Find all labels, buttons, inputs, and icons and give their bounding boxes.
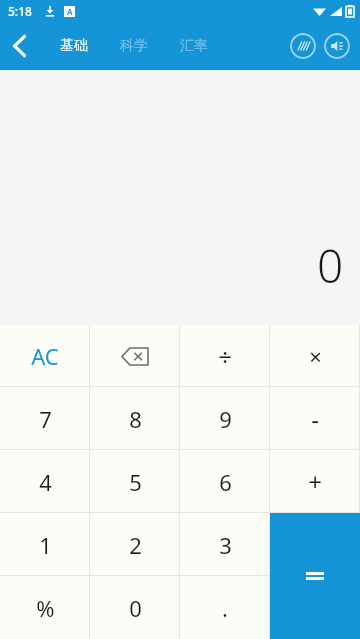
- button[interactable]: 0: [90, 576, 180, 639]
- button[interactable]: 8: [90, 387, 180, 450]
- button[interactable]: 7: [0, 387, 90, 450]
- button[interactable]: 9: [180, 387, 270, 450]
- button[interactable]: %: [0, 576, 90, 639]
- button[interactable]: 5: [90, 450, 180, 513]
- staticText: 科学: [120, 37, 148, 55]
- staticText: 8: [129, 404, 142, 434]
- staticText: ÷: [218, 340, 232, 373]
- button[interactable]: 科学: [104, 24, 164, 68]
- button[interactable]: ÷: [180, 325, 270, 387]
- staticText: 7: [39, 404, 52, 434]
- staticText: 5:18: [8, 3, 32, 19]
- staticText: %: [36, 593, 55, 623]
- staticText: 基础: [60, 37, 88, 55]
- staticText: 1: [39, 530, 52, 560]
- staticText: 汇率: [180, 37, 208, 55]
- button[interactable]: Back: [0, 22, 40, 70]
- staticText: AC: [31, 341, 59, 371]
- staticText: +: [308, 465, 322, 498]
- staticText: ×: [309, 341, 322, 371]
- staticText: -: [311, 402, 319, 435]
- button[interactable]: 基础: [44, 24, 104, 68]
- button[interactable]: Backspace: [90, 325, 180, 387]
- button[interactable]: ×: [270, 325, 360, 387]
- button[interactable]: AC: [0, 325, 90, 387]
- staticText: 2: [129, 530, 142, 560]
- button[interactable]: Vibration: [290, 33, 316, 59]
- button[interactable]: 6: [180, 450, 270, 513]
- button[interactable]: +: [270, 450, 360, 513]
- staticText: .: [222, 593, 228, 623]
- staticText: 9: [219, 404, 232, 434]
- staticText: 0: [317, 234, 344, 297]
- button[interactable]: .: [180, 576, 270, 639]
- button[interactable]: 2: [90, 513, 180, 576]
- button[interactable]: [270, 513, 360, 639]
- staticText: 4: [39, 467, 52, 497]
- staticText: 6: [219, 467, 232, 497]
- staticText: 3: [219, 530, 232, 560]
- button[interactable]: Sound: [324, 33, 350, 59]
- staticText: 5: [129, 467, 142, 497]
- button[interactable]: -: [270, 387, 360, 450]
- button[interactable]: 3: [180, 513, 270, 576]
- button[interactable]: 1: [0, 513, 90, 576]
- staticText: A: [67, 6, 73, 17]
- button[interactable]: 4: [0, 450, 90, 513]
- staticText: 0: [129, 593, 142, 623]
- button[interactable]: 汇率: [164, 24, 224, 68]
